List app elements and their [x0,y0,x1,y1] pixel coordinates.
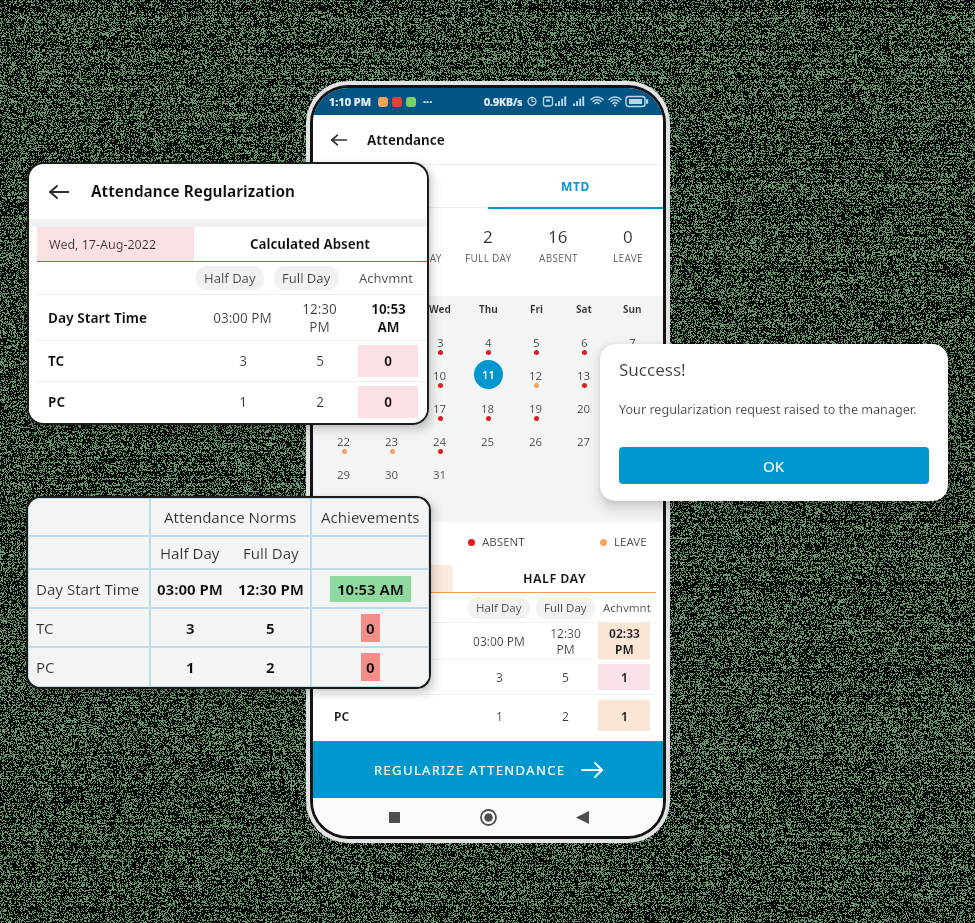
button[interactable]: 27 [571,434,597,447]
button[interactable]: 22 [331,434,357,447]
button[interactable]: 25 [475,434,501,447]
staticText: 24 [433,434,447,447]
staticText: TC [48,352,65,370]
staticText: LEAVE [613,251,643,265]
button[interactable]: 6 [571,335,597,348]
button[interactable]: 12 [523,368,549,381]
button[interactable]: 21 [619,401,645,414]
staticText: Half Day [160,543,220,563]
button[interactable]: Back [45,178,73,206]
staticText: 2 [316,393,324,411]
button[interactable]: MONTH [313,165,488,207]
staticText: HALF DAY [523,570,587,587]
staticText: 19 [529,401,543,414]
staticText: Your regularization request raised to th… [619,401,917,418]
button[interactable]: 1 [313,209,383,270]
button[interactable]: Home [475,804,501,830]
staticText: 17 [433,401,447,414]
staticText: 10 [433,368,447,381]
staticText: 31 [433,467,447,480]
staticText: PC [48,393,66,411]
staticText: Thu [479,302,498,316]
button[interactable]: 24 [427,434,453,447]
staticText: 10:53 AM [337,579,404,599]
button[interactable]: 18 [475,401,501,414]
button[interactable]: 17 [427,401,453,414]
button[interactable]: 2 [379,335,405,348]
button[interactable]: 5 [523,335,549,348]
staticText: Half Day [204,269,256,287]
staticText: 03:00 PM [473,633,525,649]
staticText: ··· [423,94,433,109]
staticText: 12:30 PM [302,300,337,336]
button[interactable]: 0 [593,209,663,270]
staticText: Achvmnt [359,269,414,287]
staticText: PC [334,708,350,724]
staticText: 30 [385,467,399,480]
staticText: 0.9KB/s [484,95,523,109]
button[interactable]: 16 [379,401,405,414]
button[interactable]: 13 [571,368,597,381]
button[interactable]: Recents [381,804,407,830]
button[interactable]: 26 [523,434,549,447]
button[interactable]: 4 [475,335,501,348]
button[interactable]: 2 [453,209,523,270]
staticText: HALF DAY [394,251,442,265]
staticText: Tue [383,302,401,316]
staticText: Full Day [544,600,587,616]
button[interactable]: Back [326,127,352,153]
staticText: ABSENT [482,534,525,550]
staticText: MTD [561,178,590,194]
staticText: 26 [529,434,543,447]
staticText: 03:00 PM [157,579,223,599]
button[interactable]: 7 [619,335,645,348]
staticText: 25 [481,434,495,447]
staticText: 10:53 AM [371,300,406,336]
staticText: PRESENT [326,251,371,265]
button[interactable]: 9 [379,368,405,381]
staticText: 12 [529,368,543,381]
button[interactable]: 16 [523,209,593,270]
staticText: 3 [437,335,444,348]
staticText: 3 [239,352,247,370]
staticText: Achievements [321,507,420,527]
staticText: 1:10 PM [329,94,372,109]
button[interactable]: LEAVE [600,534,647,550]
button[interactable]: 3 [427,335,453,348]
button[interactable]: 23 [379,434,405,447]
staticText: Day Start Time [48,309,148,327]
button[interactable]: 31 [427,467,453,480]
button[interactable]: 29 [331,467,357,480]
staticText: 29 [337,467,351,480]
button[interactable]: 11 [474,360,503,389]
staticText: 20 [577,401,591,414]
button[interactable]: 14 [619,368,645,381]
button[interactable]: MTD [488,165,663,207]
button[interactable]: ABSENT [468,534,525,550]
staticText: 0 [366,618,375,638]
button[interactable]: 1 [331,335,357,348]
button[interactable]: 0 [383,209,453,270]
button[interactable]: 20 [571,401,597,414]
staticText: 7 [629,335,636,348]
button[interactable]: 10 [427,368,453,381]
staticText: 16 [385,401,399,414]
staticText: 14 [625,368,639,381]
staticText: 0 [623,225,633,248]
staticText: 18 [481,401,495,414]
button[interactable]: 30 [379,467,405,480]
staticText: 1 [621,708,628,724]
staticText: 22 [337,434,351,447]
button[interactable]: OK [619,447,929,484]
staticText: Sat [576,302,592,316]
button[interactable]: 19 [523,401,549,414]
staticText: 5 [316,352,324,370]
staticText: 1 [621,669,628,685]
button[interactable]: Back [569,804,595,830]
staticText: PC [36,657,55,677]
button[interactable]: REGULARIZE ATTENDANCE [313,741,663,798]
